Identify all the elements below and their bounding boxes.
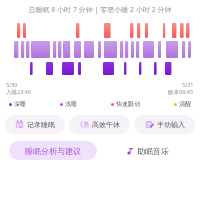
button[interactable]: 记录睡眠 bbox=[5, 115, 65, 134]
other: Sleep stage chart bbox=[0, 21, 200, 81]
staticText: 入睡23:40 bbox=[6, 88, 32, 96]
staticText: 5/30 bbox=[6, 81, 18, 88]
button[interactable]: 睡眠分析与建议 bbox=[9, 141, 97, 160]
button[interactable]: 手动输入 bbox=[134, 115, 195, 134]
staticText: 5/31 bbox=[182, 81, 194, 88]
button[interactable]: 浅睡 bbox=[60, 100, 77, 108]
staticText: 助眠音乐 bbox=[137, 146, 169, 156]
staticText: 总睡眠 8 小时 7 分钟 | 零星小睡 2 小时 2 分钟 bbox=[3, 5, 197, 15]
staticText: 醒来06:45 bbox=[168, 88, 194, 96]
button[interactable]: 深睡 bbox=[9, 100, 26, 108]
button[interactable]: 助眠音乐 bbox=[103, 141, 191, 160]
staticText: 快速眼动 bbox=[116, 100, 140, 108]
button[interactable]: 清醒 bbox=[174, 100, 191, 108]
staticText: 睡眠分析与建议 bbox=[25, 146, 81, 156]
button[interactable]: 快速眼动 bbox=[111, 100, 140, 108]
staticText: 手动输入 bbox=[157, 120, 185, 129]
button[interactable]: 高效午休 bbox=[69, 115, 130, 134]
staticText: 高效午休 bbox=[92, 120, 120, 129]
staticText: 记录睡眠 bbox=[27, 120, 55, 129]
staticText: 浅睡 bbox=[65, 100, 77, 108]
staticText: 清醒 bbox=[179, 100, 191, 108]
staticText: 深睡 bbox=[14, 100, 26, 108]
